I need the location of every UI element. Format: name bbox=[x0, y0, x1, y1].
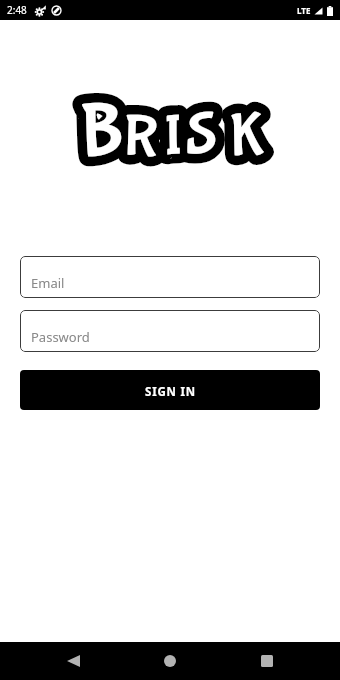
button[interactable]: Password bbox=[20, 310, 320, 352]
staticText: Email bbox=[31, 274, 65, 292]
button[interactable]: Home bbox=[146, 642, 194, 680]
button[interactable]: Back bbox=[49, 642, 97, 680]
staticText: SIGN IN bbox=[145, 384, 196, 400]
button[interactable]: SIGN IN bbox=[20, 370, 320, 410]
button[interactable]: Recents bbox=[243, 642, 291, 680]
staticText: 2:48 bbox=[7, 3, 27, 17]
staticText: LTE bbox=[297, 5, 311, 16]
button[interactable]: Email bbox=[20, 256, 320, 298]
staticText: Password bbox=[31, 328, 90, 346]
